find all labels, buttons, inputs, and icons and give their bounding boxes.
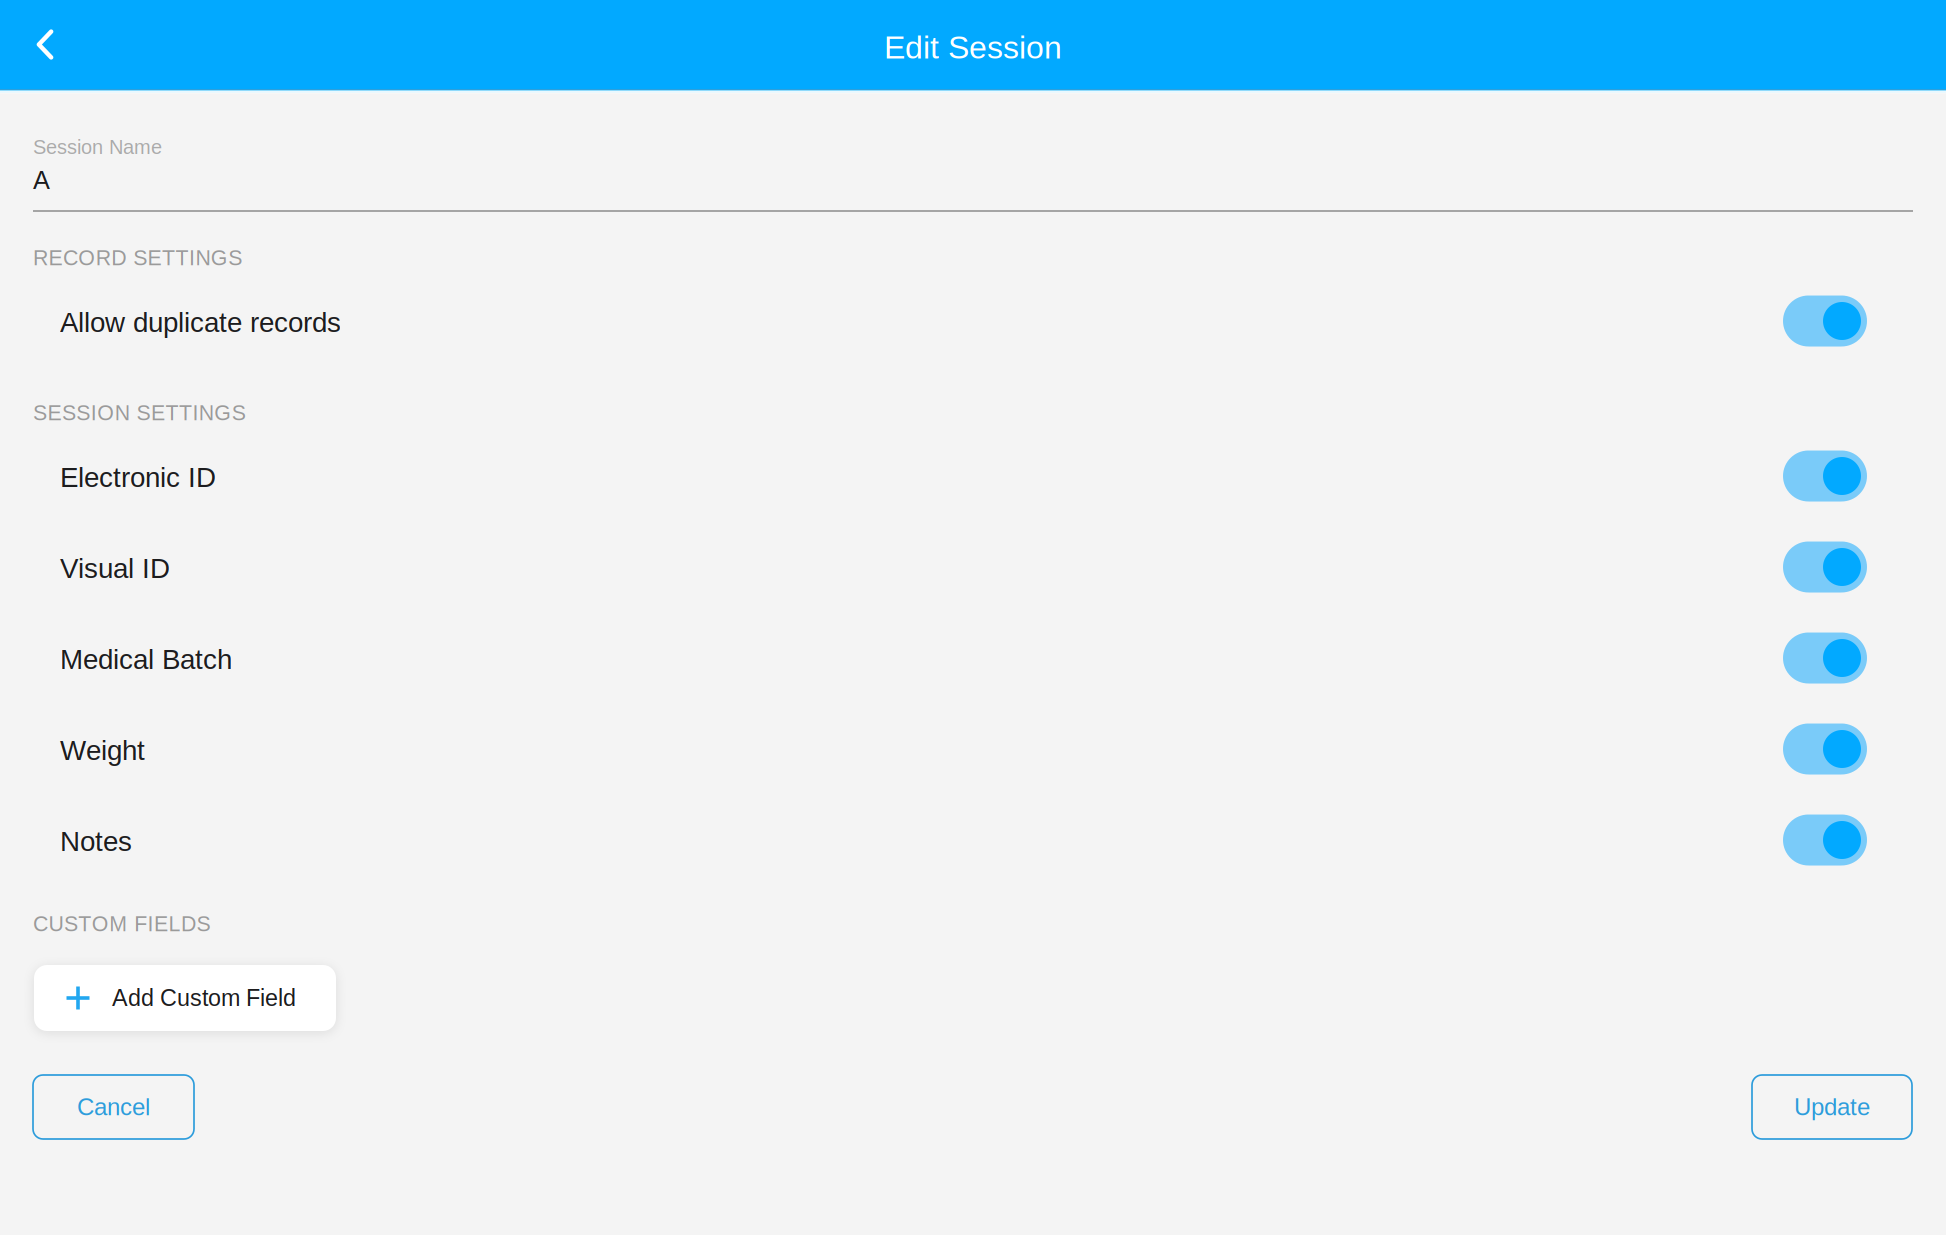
button[interactable]: Update [1752,1075,1912,1139]
staticText: A [33,166,50,194]
staticText: Update [1794,1094,1870,1120]
staticText: Cancel [77,1094,150,1120]
button[interactable]: Electronic ID [33,432,1913,523]
staticText: CUSTOM FIELDS [33,912,210,936]
staticText: Weight [60,735,145,766]
staticText: Allow duplicate records [60,307,341,338]
button[interactable]: Notes [33,796,1913,887]
button[interactable]: Medical Batch [33,614,1913,705]
button[interactable]: Weight [33,705,1913,796]
staticText: RECORD SETTINGS [33,246,242,270]
staticText: Medical Batch [60,644,232,675]
staticText: Notes [60,826,132,857]
staticText: Electronic ID [60,462,216,493]
staticText: Edit Session [884,30,1062,65]
staticText: Session Name [33,136,162,158]
button[interactable]: Back [0,0,90,89]
staticText: Add Custom Field [112,985,296,1011]
button[interactable]: Cancel [33,1075,194,1139]
button[interactable]: Visual ID [33,523,1913,614]
staticText: SESSION SETTINGS [33,401,246,425]
button[interactable]: Allow duplicate records [33,277,1913,368]
staticText: Visual ID [60,553,170,584]
button[interactable]: Add Custom Field [34,965,336,1031]
